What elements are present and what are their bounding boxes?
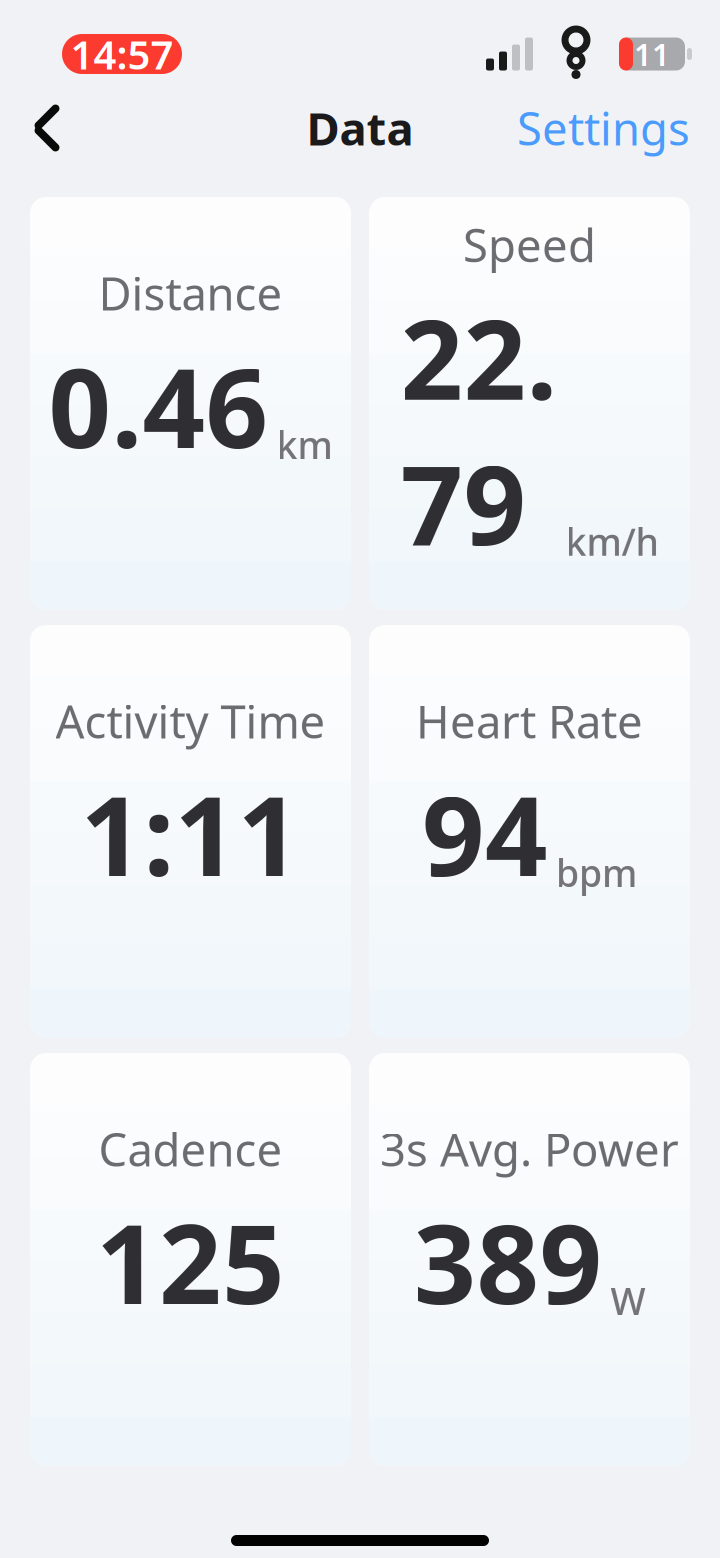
button[interactable]: Activity Time [30, 625, 351, 1038]
button[interactable]: Heart Rate [369, 625, 690, 1038]
staticText: 14:57 [70, 27, 173, 80]
button[interactable]: Cadence [30, 1053, 351, 1466]
staticText: 3s Avg. Power [380, 1119, 679, 1179]
staticText: 389 [413, 1189, 602, 1334]
staticText: 11 [634, 34, 670, 74]
button[interactable]: Speed [369, 197, 690, 610]
staticText: Speed [463, 214, 596, 275]
staticText: Distance [98, 263, 282, 323]
staticText: W [610, 1276, 645, 1325]
button[interactable]: Distance [30, 197, 351, 610]
staticText: bpm [556, 848, 637, 897]
staticText: Cadence [98, 1119, 282, 1179]
staticText: km [276, 420, 332, 469]
staticText: Data [306, 98, 413, 158]
staticText: 125 [96, 1189, 285, 1334]
staticText: km/h [565, 516, 658, 566]
button[interactable]: Back [12, 93, 82, 163]
staticText: 1:11 [80, 761, 300, 906]
staticText: Activity Time [55, 691, 325, 751]
staticText: 0.46 [48, 333, 268, 478]
button[interactable]: Settings [511, 93, 696, 163]
staticText: Settings [517, 98, 690, 158]
staticText: 22.79 [400, 285, 557, 575]
staticText: 94 [422, 761, 548, 906]
staticText: Heart Rate [416, 691, 643, 751]
button[interactable]: 3s Avg. Power [369, 1053, 690, 1466]
